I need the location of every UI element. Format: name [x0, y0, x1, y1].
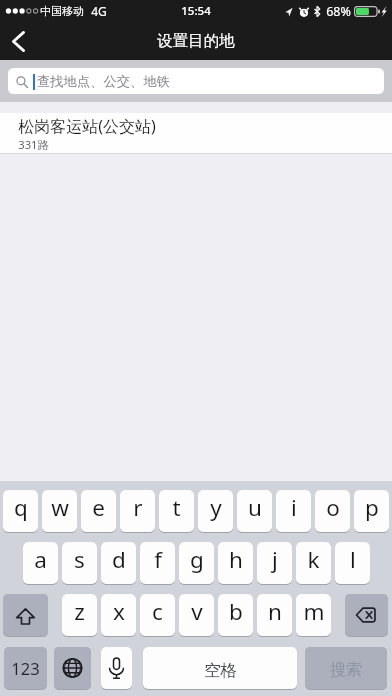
- staticText: 松岗客运站(公交站): [18, 115, 156, 137]
- staticText: w: [51, 492, 69, 523]
- button[interactable]: 搜索: [305, 647, 387, 689]
- button[interactable]: x: [101, 594, 136, 636]
- button[interactable]: y: [198, 490, 233, 532]
- staticText: 中国移动: [40, 4, 84, 18]
- button[interactable]: z: [62, 594, 97, 636]
- staticText: x: [113, 596, 125, 627]
- button[interactable]: 语音输入: [101, 647, 132, 689]
- button[interactable]: 123: [4, 647, 47, 689]
- staticText: z: [74, 596, 85, 627]
- staticText: j: [272, 544, 278, 575]
- button[interactable]: 返回: [0, 22, 40, 60]
- button[interactable]: k: [296, 542, 331, 584]
- staticText: 空格: [204, 660, 237, 681]
- staticText: i: [291, 492, 297, 523]
- button[interactable]: s: [62, 542, 97, 584]
- staticText: 15:54: [181, 3, 211, 19]
- button[interactable]: q: [3, 490, 38, 532]
- staticText: g: [190, 544, 204, 575]
- staticText: m: [303, 596, 325, 627]
- button[interactable]: e: [81, 490, 116, 532]
- button[interactable]: r: [120, 490, 155, 532]
- staticText: h: [229, 544, 243, 575]
- button[interactable]: j: [257, 542, 292, 584]
- staticText: 123: [11, 657, 40, 679]
- button[interactable]: 查找地点、公交、地铁: [8, 68, 384, 94]
- staticText: k: [307, 544, 320, 575]
- staticText: d: [112, 544, 126, 575]
- button[interactable]: d: [101, 542, 136, 584]
- button[interactable]: m: [296, 594, 331, 636]
- staticText: a: [34, 544, 47, 575]
- staticText: e: [92, 492, 105, 523]
- button[interactable]: b: [218, 594, 253, 636]
- staticText: t: [172, 492, 181, 523]
- staticText: y: [210, 492, 222, 523]
- staticText: 搜索: [330, 660, 362, 680]
- button[interactable]: u: [237, 490, 272, 532]
- staticText: p: [365, 492, 379, 523]
- button[interactable]: c: [140, 594, 175, 636]
- staticText: 4G: [91, 3, 107, 19]
- button[interactable]: h: [218, 542, 253, 584]
- button[interactable]: p: [354, 490, 389, 532]
- button[interactable]: 退格: [345, 594, 388, 636]
- staticText: f: [154, 544, 162, 575]
- staticText: r: [133, 492, 143, 523]
- staticText: b: [229, 596, 243, 627]
- button[interactable]: 切换键盘: [54, 647, 91, 689]
- staticText: 68%: [326, 3, 351, 20]
- button[interactable]: t: [159, 490, 194, 532]
- staticText: 查找地点、公交、地铁: [37, 73, 170, 90]
- button[interactable]: f: [140, 542, 175, 584]
- staticText: c: [152, 596, 163, 627]
- button[interactable]: l: [335, 542, 370, 584]
- button[interactable]: g: [179, 542, 214, 584]
- staticText: u: [248, 492, 262, 523]
- button[interactable]: v: [179, 594, 214, 636]
- button[interactable]: Shift: [3, 594, 48, 636]
- button[interactable]: n: [257, 594, 292, 636]
- button[interactable]: a: [23, 542, 58, 584]
- button[interactable]: 空格: [143, 647, 297, 689]
- button[interactable]: 松岗客运站(公交站): [0, 113, 392, 154]
- staticText: l: [350, 544, 356, 575]
- staticText: o: [326, 492, 340, 523]
- button[interactable]: i: [276, 490, 311, 532]
- staticText: q: [14, 492, 28, 523]
- staticText: n: [268, 596, 282, 627]
- staticText: v: [191, 596, 203, 627]
- staticText: s: [74, 544, 85, 575]
- button[interactable]: w: [42, 490, 77, 532]
- button[interactable]: o: [315, 490, 350, 532]
- staticText: 设置目的地: [157, 31, 235, 51]
- staticText: 331路: [18, 137, 49, 152]
